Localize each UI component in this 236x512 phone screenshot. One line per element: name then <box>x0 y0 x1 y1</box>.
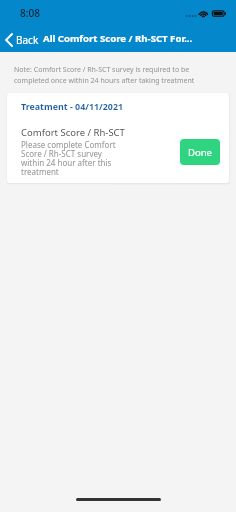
other: Back <box>5 33 13 47</box>
staticText: 8:08 <box>20 6 40 20</box>
button[interactable]: Back <box>0 27 39 50</box>
staticText: Note: Comfort Score / Rh-SCT survey is r… <box>14 65 198 85</box>
button[interactable]: Treatment - 04/11/2021 <box>7 93 229 183</box>
staticText: Back <box>16 33 39 47</box>
staticText: All Comfort Score / Rh-SCT For... <box>43 32 193 45</box>
staticText: Done <box>188 146 212 159</box>
staticText: Please complete Comfort Score / Rh-SCT s… <box>21 139 125 178</box>
staticText: Comfort Score / Rh-SCT <box>21 126 125 139</box>
staticText: Treatment - 04/11/2021 <box>21 100 124 112</box>
button[interactable]: Done <box>180 139 220 165</box>
